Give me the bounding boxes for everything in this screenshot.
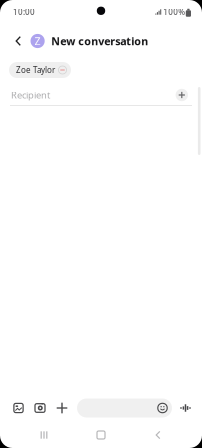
button[interactable]: Zoe Taylor <box>9 62 71 78</box>
staticText: 10:00 <box>13 7 35 17</box>
staticText: 100% <box>163 7 185 17</box>
staticText: Recipient <box>11 89 50 101</box>
button[interactable]: Back <box>142 424 174 446</box>
button[interactable]: Home <box>85 424 117 446</box>
staticText: New conversation <box>51 34 148 48</box>
button[interactable]: Voice input <box>180 395 191 421</box>
button[interactable]: Recents <box>28 424 60 446</box>
button[interactable]: Back <box>6 24 30 58</box>
button[interactable]: More options <box>51 395 73 421</box>
button[interactable]: Camera <box>29 395 51 421</box>
button[interactable]: Enter message <box>77 398 172 417</box>
staticText: Z <box>35 34 41 48</box>
staticText: Zoe Taylor <box>16 65 55 75</box>
button[interactable]: Gallery <box>8 395 29 421</box>
button[interactable]: Add recipient <box>176 89 188 101</box>
